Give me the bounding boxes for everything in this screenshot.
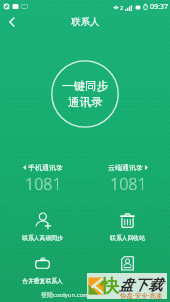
staticText: 09:37 [150, 2, 168, 12]
staticText: 通讯录 [68, 95, 103, 109]
button[interactable]: 云端通讯录 [85, 163, 170, 195]
staticText: 联系人 [71, 16, 100, 28]
button[interactable]: 联系人高级同步 [0, 212, 85, 241]
button[interactable]: 联系人亲密度 [85, 255, 170, 284]
staticText: 合并重复联系人 [22, 277, 63, 284]
staticText: 1081 [25, 173, 62, 195]
staticText: 登陆coolyun.com [41, 291, 89, 299]
staticText: 盘下载 [119, 276, 163, 294]
staticText: 手机通讯录 [28, 163, 63, 172]
staticText: 快 [101, 275, 119, 298]
staticText: 联系人亲密度 [110, 277, 145, 284]
staticText: 1081 [110, 173, 147, 195]
staticText: 2 [120, 4, 124, 11]
staticText: 联系人高级同步 [22, 234, 63, 241]
button[interactable]: 合并重复联系人 [0, 255, 85, 284]
staticText: 一键同步 [62, 79, 108, 93]
staticText: 联系人回收站 [110, 234, 145, 241]
button[interactable]: 联系人回收站 [85, 212, 170, 241]
staticText: 云端通讯录 [108, 163, 143, 172]
button[interactable]: 手机通讯录 [0, 163, 85, 195]
button[interactable]: 一键同步 [51, 60, 119, 128]
staticText: 快盘·安全·高速 [120, 291, 163, 300]
button[interactable]: Back [1, 11, 23, 33]
